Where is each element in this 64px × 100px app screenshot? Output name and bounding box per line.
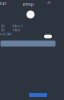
staticText: Lbl — [1, 28, 5, 32]
staticText: 9:41 — [0, 2, 7, 6]
staticText: Settings — [22, 3, 33, 6]
staticText: Long labl — [0, 32, 12, 36]
staticText: Value h — [12, 24, 23, 28]
staticText: ıll — [47, 1, 50, 5]
staticText: Lbl — [1, 24, 5, 28]
staticText: Value — [13, 28, 21, 32]
